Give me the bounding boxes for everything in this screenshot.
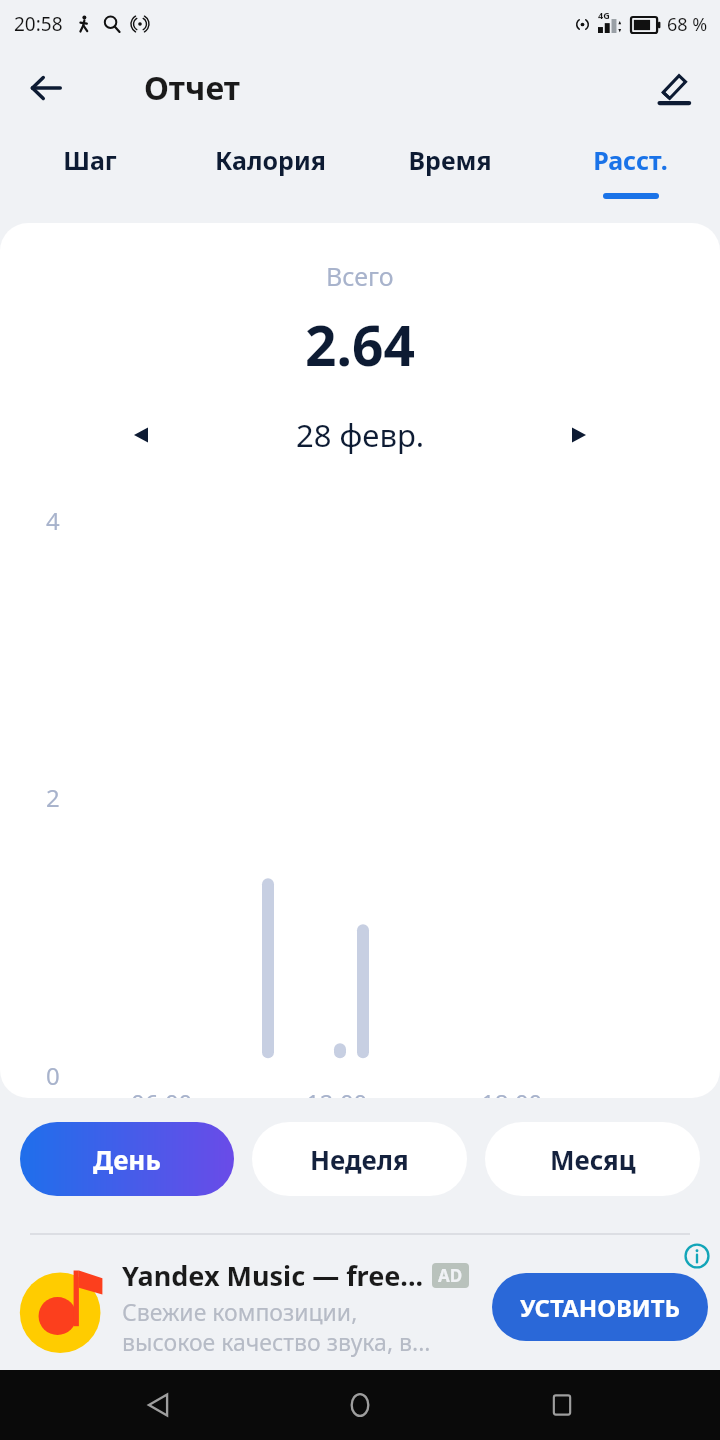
staticText: 12:00 (306, 1086, 368, 1098)
staticText: Всего (326, 259, 394, 293)
staticText: УСТАНОВИТЬ (520, 1291, 681, 1324)
staticText: Расст. (593, 143, 668, 177)
button[interactable]: Next day (548, 404, 610, 466)
staticText: Yandex Music — free... (122, 1257, 424, 1294)
button[interactable]: Ad information (680, 1239, 714, 1273)
button[interactable]: Previous day (110, 404, 172, 466)
button[interactable]: Edit (646, 60, 702, 116)
staticText: 68 % (667, 12, 708, 37)
staticText: 28 февр. (296, 414, 425, 456)
staticText: 2 (46, 781, 60, 814)
button[interactable]: День (20, 1122, 234, 1196)
button[interactable]: Неделя (252, 1122, 467, 1196)
staticText: День (93, 1142, 161, 1177)
button[interactable]: Калория (180, 128, 360, 213)
button[interactable]: Месяц (485, 1122, 700, 1196)
staticText: Свежие композиции, высокое качество звук… (122, 1296, 431, 1357)
staticText: 06:00 (131, 1086, 193, 1098)
button[interactable]: Back (128, 1375, 188, 1435)
staticText: Время (408, 143, 492, 177)
staticText: 4 (46, 504, 60, 537)
button[interactable]: Recent apps (532, 1375, 592, 1435)
button[interactable]: Расст. (540, 128, 720, 213)
staticText: 2.64 (305, 307, 415, 382)
button[interactable]: УСТАНОВИТЬ (492, 1273, 708, 1341)
button[interactable]: Home (330, 1375, 390, 1435)
staticText: 20:58 (14, 11, 63, 37)
staticText: 18:00 (481, 1086, 543, 1098)
staticText: Калория (215, 143, 326, 177)
button[interactable]: Back (18, 60, 74, 116)
staticText: Месяц (550, 1142, 636, 1177)
button[interactable]: Шаг (0, 128, 180, 213)
staticText: Неделя (310, 1142, 409, 1177)
staticText: 4G (598, 9, 610, 21)
button[interactable]: Yandex Music — free... (0, 1233, 720, 1370)
button[interactable]: Время (360, 128, 540, 213)
staticText: 0 (46, 1059, 60, 1092)
staticText: Отчет (144, 66, 240, 110)
staticText: Шаг (63, 143, 117, 177)
staticText: AD (438, 1264, 463, 1287)
